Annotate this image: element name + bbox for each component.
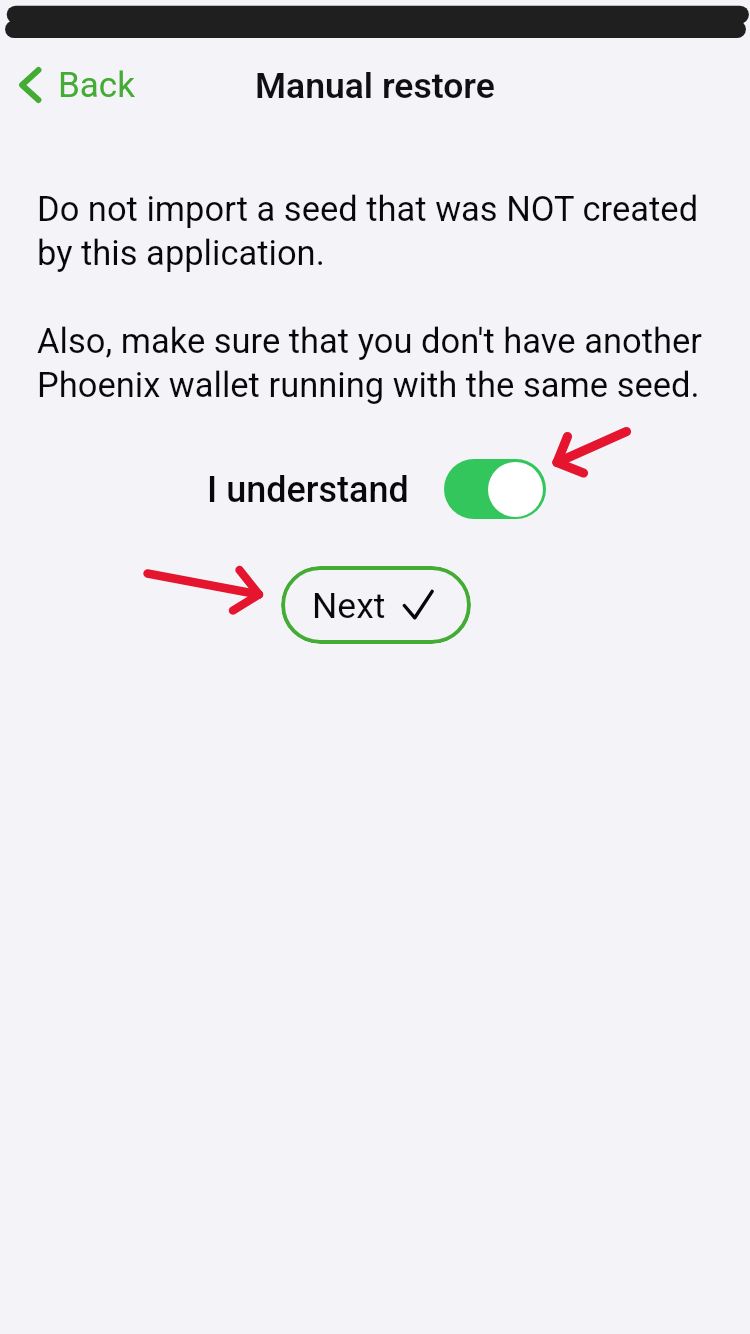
staticText: Back xyxy=(58,65,135,106)
staticText: I understand xyxy=(207,469,409,511)
button[interactable]: Next xyxy=(281,566,471,644)
button[interactable]: I understand switch, on xyxy=(444,459,546,519)
button[interactable]: Back xyxy=(10,59,145,111)
staticText: Do not import a seed that was NOT create… xyxy=(37,189,720,405)
staticText: Next xyxy=(312,585,386,627)
button[interactable]: I understand xyxy=(196,449,556,529)
staticText: Manual restore xyxy=(255,65,495,107)
